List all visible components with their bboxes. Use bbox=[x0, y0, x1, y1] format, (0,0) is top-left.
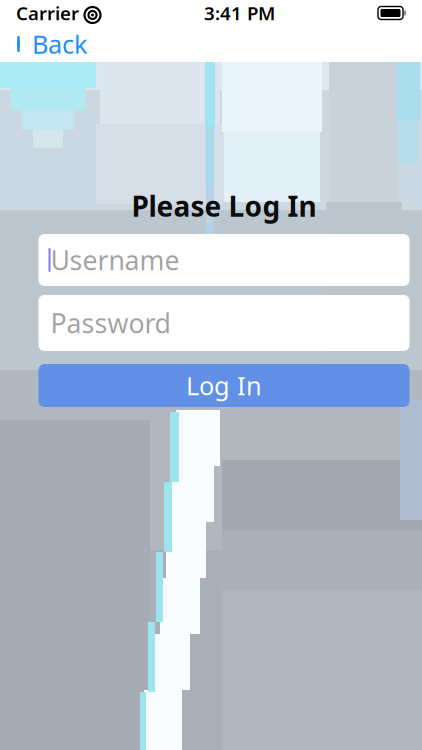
button[interactable]: Log In bbox=[38, 364, 409, 407]
staticText: Password bbox=[50, 305, 170, 341]
staticText: 3:41 PM bbox=[204, 1, 275, 25]
staticText: Carrier bbox=[16, 1, 79, 25]
staticText: Username bbox=[50, 242, 179, 278]
staticText: Please Log In bbox=[131, 187, 316, 225]
button[interactable]: Password bbox=[38, 295, 409, 351]
button[interactable]: Username bbox=[38, 234, 409, 286]
staticText: Back bbox=[32, 27, 88, 61]
staticText: Log In bbox=[186, 369, 262, 402]
button[interactable]: Back bbox=[0, 26, 100, 62]
